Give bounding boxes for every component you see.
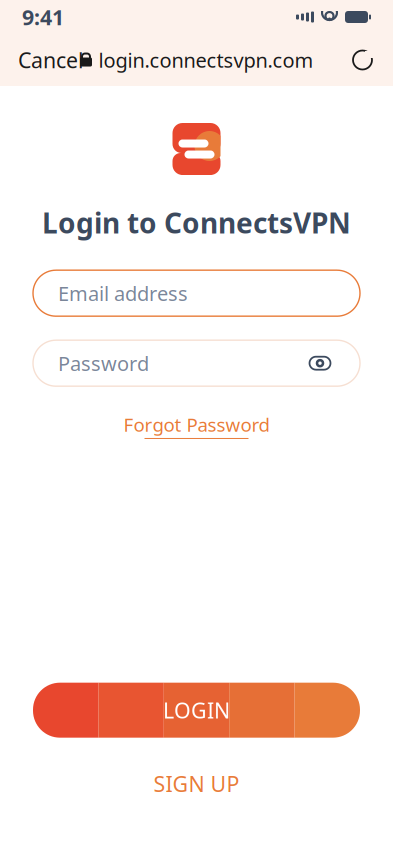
button[interactable]: LOGIN: [33, 683, 360, 738]
button[interactable]: Reload page: [346, 41, 379, 78]
staticText: Login to ConnectsVPN: [42, 204, 351, 241]
button[interactable]: Forgot Password: [115, 408, 277, 443]
staticText: 9:41: [22, 3, 64, 31]
staticText: Password: [58, 350, 149, 376]
button[interactable]: SIGN UP: [135, 762, 257, 806]
staticText: Cancel: [18, 46, 84, 74]
staticText: login.connectsvpn.com: [98, 47, 313, 73]
staticText: LOGIN: [163, 696, 230, 724]
staticText: Email address: [58, 280, 188, 306]
button[interactable]: Cancel: [14, 36, 88, 84]
button[interactable]: Show password: [305, 350, 335, 377]
staticText: Forgot Password: [123, 412, 269, 437]
staticText: SIGN UP: [153, 770, 239, 798]
